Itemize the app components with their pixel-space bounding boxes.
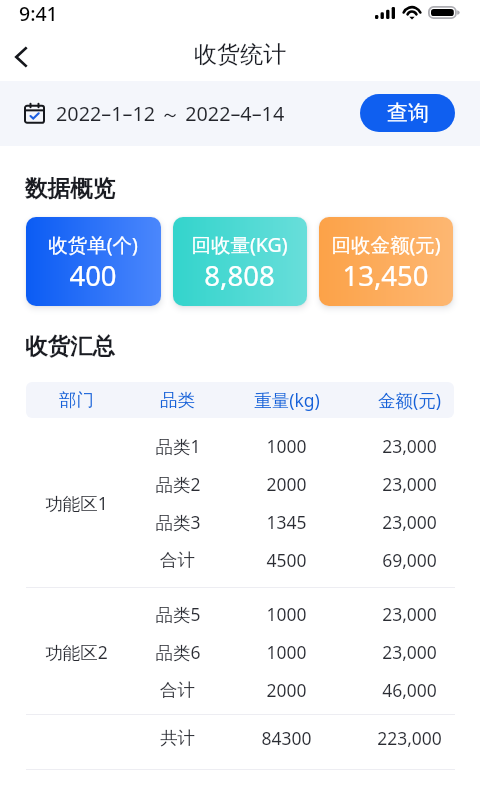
staticText: 合计 (160, 679, 195, 701)
staticText: 品类1 (155, 434, 201, 458)
button[interactable]: 收货单(个) (26, 217, 161, 306)
staticText: 功能区2 (45, 640, 108, 664)
staticText: 1345 (266, 510, 307, 534)
staticText: 84300 (261, 726, 312, 750)
staticText: 23,000 (382, 472, 437, 496)
staticText: 品类 (160, 389, 195, 411)
staticText: 4500 (266, 548, 307, 572)
staticText: 收货统计 (194, 40, 286, 69)
staticText: 回收金额(元) (331, 231, 441, 258)
staticText: 2000 (266, 678, 307, 702)
staticText: 13,450 (342, 257, 429, 294)
staticText: 8,808 (204, 257, 275, 294)
staticText: 9:41 (19, 0, 58, 27)
staticText: 1000 (266, 602, 307, 626)
staticText: 46,000 (382, 678, 437, 702)
staticText: 1000 (266, 434, 307, 458)
staticText: 金额(元) (378, 388, 441, 412)
staticText: 部门 (59, 389, 94, 411)
staticText: 查询 (387, 100, 429, 126)
staticText: 功能区1 (45, 491, 108, 515)
staticText: 回收量(KG) (191, 231, 288, 258)
staticText: 2000 (266, 472, 307, 496)
staticText: 数据概览 (25, 174, 115, 202)
staticText: 23,000 (382, 434, 437, 458)
staticText: 2022–1–12 ～ 2022–4–14 (56, 100, 285, 127)
button[interactable]: 回收金额(元) (319, 217, 453, 306)
button[interactable]: 2022–1–12 ～ 2022–4–14 (24, 100, 285, 127)
staticText: 23,000 (382, 602, 437, 626)
staticText: 收货单(个) (48, 231, 138, 258)
button[interactable]: 回收量(KG) (173, 217, 307, 306)
staticText: 合计 (160, 549, 195, 571)
staticText: 69,000 (382, 548, 437, 572)
button[interactable]: Back (0, 36, 42, 78)
staticText: 1000 (266, 640, 307, 664)
staticText: 收货汇总 (25, 332, 115, 360)
button[interactable] (26, 382, 454, 418)
button[interactable]: 查询 (360, 94, 455, 132)
staticText: 品类5 (155, 602, 201, 626)
staticText: 23,000 (382, 510, 437, 534)
staticText: 23,000 (382, 640, 437, 664)
staticText: 223,000 (377, 726, 442, 750)
staticText: 400 (69, 257, 117, 294)
staticText: 品类6 (155, 640, 201, 664)
staticText: 品类3 (155, 510, 201, 534)
staticText: 品类2 (155, 472, 201, 496)
staticText: 重量(kg) (254, 388, 320, 412)
staticText: 共计 (160, 727, 195, 749)
